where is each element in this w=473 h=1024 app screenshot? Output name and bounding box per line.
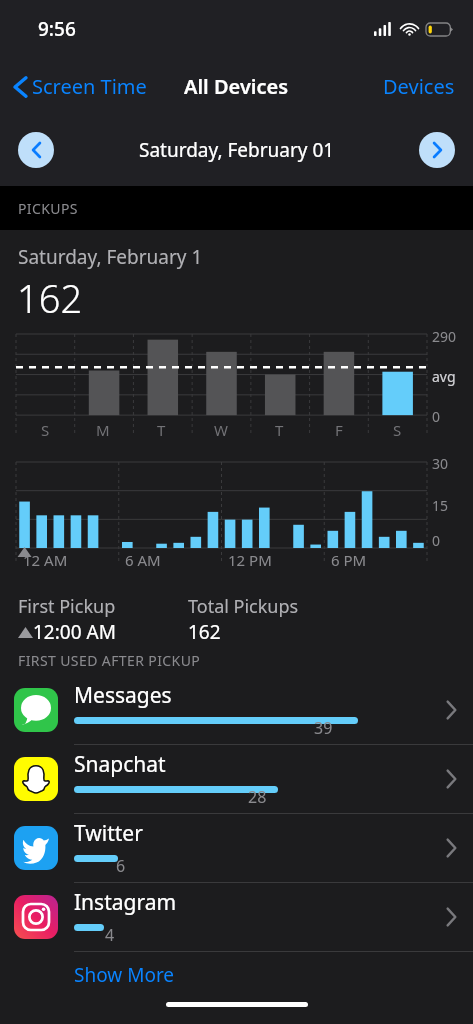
button[interactable]: Messages [0, 676, 473, 745]
staticText: FIRST USED AFTER PICKUP [18, 651, 201, 670]
staticText: Screen Time [32, 73, 147, 100]
staticText: Total Pickups [188, 594, 299, 619]
staticText: 6 AM [125, 550, 161, 570]
staticText: W [214, 420, 228, 440]
staticText: 28 [248, 786, 267, 808]
staticText: 12 AM [23, 550, 68, 570]
button[interactable]: Twitter [0, 814, 473, 883]
staticText: 30 [432, 454, 449, 473]
button[interactable]: Screen Time [10, 67, 151, 106]
button[interactable]: Previous day [18, 132, 54, 168]
staticText: PICKUPS [18, 199, 78, 218]
staticText: S [41, 420, 50, 440]
button[interactable]: Next day [419, 132, 455, 168]
staticText: avg [432, 367, 456, 386]
button[interactable]: Snapchat [0, 745, 473, 814]
staticText: Instagram [74, 888, 177, 917]
staticText: Saturday, February 01 [139, 137, 335, 163]
staticText: 6 PM [331, 550, 367, 570]
staticText: 12:00 AM [33, 619, 116, 645]
staticText: 12 PM [228, 550, 272, 570]
staticText: 39 [314, 717, 333, 739]
button[interactable]: Show More [0, 952, 473, 998]
staticText: 15 [432, 496, 449, 515]
staticText: All Devices [184, 73, 289, 100]
staticText: 0 [432, 531, 441, 548]
staticText: 6 [116, 855, 126, 877]
staticText: T [157, 420, 166, 440]
staticText: Saturday, February 1 [18, 244, 203, 270]
staticText: Show More [74, 962, 175, 988]
staticText: 4 [105, 924, 115, 946]
button[interactable]: Instagram [0, 883, 473, 952]
staticText: Twitter [74, 819, 143, 848]
staticText: 9:56 [38, 16, 76, 42]
staticText: Messages [74, 681, 172, 710]
staticText: F [335, 420, 343, 440]
button[interactable]: Devices [379, 67, 459, 106]
staticText: Devices [383, 73, 455, 100]
staticText: Snapchat [74, 750, 166, 779]
staticText: 162 [188, 619, 221, 645]
staticText: 0 [432, 407, 441, 426]
staticText: 290 [432, 327, 457, 346]
staticText: T [275, 420, 284, 440]
staticText: S [393, 420, 402, 440]
staticText: M [96, 420, 110, 440]
staticText: 162 [17, 272, 83, 324]
staticText: First Pickup [18, 594, 116, 619]
